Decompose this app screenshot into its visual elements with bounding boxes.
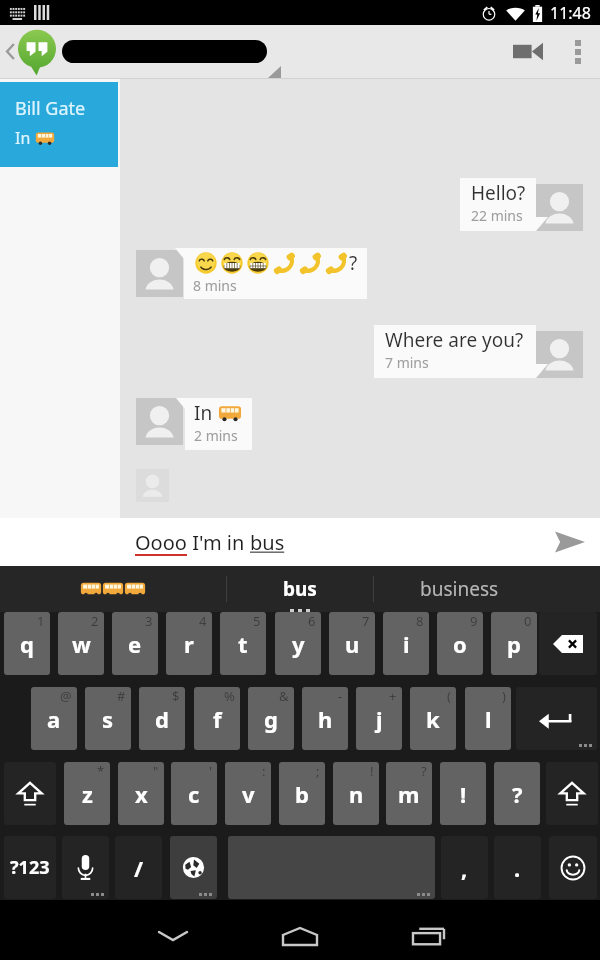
staticText: 4 bbox=[199, 612, 207, 630]
button[interactable]: More options bbox=[556, 25, 600, 78]
button[interactable]: x bbox=[118, 762, 164, 825]
staticText: 5 bbox=[253, 612, 261, 630]
staticText: b bbox=[295, 779, 309, 809]
button[interactable]: Shift bbox=[4, 762, 56, 825]
button[interactable]: ! bbox=[440, 762, 486, 825]
button[interactable]: Back bbox=[0, 25, 20, 78]
staticText: w bbox=[72, 629, 91, 659]
button[interactable]: Recents bbox=[368, 906, 488, 960]
staticText: o bbox=[453, 629, 467, 659]
staticText: Bill Gate bbox=[15, 96, 86, 121]
staticText: x bbox=[135, 779, 148, 809]
button[interactable]: u bbox=[329, 612, 375, 675]
button[interactable]: g bbox=[248, 687, 294, 750]
staticText: + bbox=[389, 687, 397, 705]
staticText: u bbox=[345, 629, 360, 659]
staticText: j bbox=[376, 704, 383, 734]
button[interactable]: bus bbox=[227, 566, 373, 612]
staticText: i bbox=[403, 629, 410, 659]
button[interactable]: y bbox=[275, 612, 321, 675]
button[interactable]: ?123 bbox=[4, 836, 56, 899]
staticText: t bbox=[238, 629, 248, 659]
staticText: ? bbox=[512, 779, 523, 809]
button[interactable]: Voice input bbox=[62, 836, 109, 899]
staticText: m bbox=[398, 779, 420, 809]
staticText: 8 bbox=[416, 612, 424, 630]
button[interactable]: , bbox=[441, 836, 488, 899]
staticText: r bbox=[184, 629, 194, 659]
button[interactable]: In bbox=[185, 398, 252, 450]
button[interactable]: Where are you? bbox=[374, 325, 536, 378]
button[interactable]: Home bbox=[240, 906, 360, 960]
staticText: / bbox=[134, 853, 144, 883]
button[interactable]: r bbox=[166, 612, 212, 675]
staticText: 9 bbox=[470, 612, 478, 630]
button[interactable]: e bbox=[112, 612, 158, 675]
staticText: g bbox=[264, 704, 278, 734]
button[interactable]: Video call bbox=[500, 25, 556, 78]
staticText: bus bbox=[250, 529, 285, 556]
staticText: - bbox=[338, 687, 343, 705]
staticText: In bbox=[194, 400, 218, 426]
button[interactable]: n bbox=[333, 762, 379, 825]
button[interactable]: q bbox=[4, 612, 50, 675]
button[interactable]: a bbox=[31, 687, 77, 750]
staticText: ! bbox=[370, 762, 374, 780]
staticText: ? bbox=[349, 250, 358, 276]
staticText: 8 mins bbox=[193, 276, 237, 295]
staticText: business bbox=[420, 576, 499, 602]
staticText: h bbox=[318, 704, 333, 734]
staticText: Oooo bbox=[135, 529, 187, 556]
staticText: 1 bbox=[37, 612, 45, 630]
button[interactable]: ? bbox=[494, 762, 540, 825]
button[interactable]: k bbox=[410, 687, 456, 750]
button[interactable]: Space bbox=[228, 836, 435, 899]
staticText: In bbox=[15, 127, 35, 149]
button[interactable]: Enter bbox=[516, 687, 597, 750]
button[interactable]: l bbox=[465, 687, 511, 750]
button[interactable]: Hide keyboard bbox=[113, 906, 233, 960]
button[interactable]: Send bbox=[540, 518, 600, 566]
button[interactable]: o bbox=[437, 612, 483, 675]
staticText: 3 bbox=[145, 612, 153, 630]
button[interactable]: Shift bbox=[546, 762, 598, 825]
staticText: 11:48 bbox=[550, 2, 591, 24]
staticText: 2 mins bbox=[194, 426, 238, 445]
button[interactable]: b bbox=[279, 762, 325, 825]
button[interactable]: t bbox=[220, 612, 266, 675]
button[interactable]: j bbox=[356, 687, 402, 750]
button[interactable]: Hello? bbox=[460, 178, 536, 231]
staticText: q bbox=[20, 629, 34, 659]
staticText: * bbox=[97, 762, 105, 780]
button[interactable]: Bill Gate bbox=[0, 82, 118, 167]
button[interactable]: Backspace bbox=[539, 612, 597, 675]
button[interactable]: w bbox=[58, 612, 104, 675]
staticText: ) bbox=[502, 687, 506, 705]
staticText: Where are you? bbox=[385, 327, 524, 353]
button[interactable]: f bbox=[194, 687, 240, 750]
button[interactable]: m bbox=[386, 762, 432, 825]
staticText: 2 bbox=[91, 612, 99, 630]
staticText: $ bbox=[172, 687, 180, 705]
button[interactable]: / bbox=[115, 836, 162, 899]
staticText: 7 bbox=[362, 612, 370, 630]
button[interactable]: . bbox=[494, 836, 541, 899]
button[interactable]: i bbox=[383, 612, 429, 675]
button[interactable]: z bbox=[64, 762, 110, 825]
staticText: s bbox=[102, 704, 114, 734]
button[interactable]: p bbox=[491, 612, 537, 675]
button[interactable]: bus emoji suggestion bbox=[0, 566, 226, 612]
staticText: bus bbox=[283, 576, 317, 602]
button[interactable]: Change language bbox=[170, 836, 217, 899]
button[interactable]: business bbox=[374, 566, 600, 612]
button[interactable]: ? bbox=[184, 248, 367, 299]
button[interactable]: Emoji bbox=[549, 836, 597, 899]
staticText: 6 bbox=[308, 612, 316, 630]
button[interactable]: h bbox=[302, 687, 348, 750]
staticText: l bbox=[485, 704, 492, 734]
button[interactable]: c bbox=[171, 762, 217, 825]
button[interactable]: s bbox=[85, 687, 131, 750]
button[interactable]: d bbox=[139, 687, 185, 750]
staticText: p bbox=[507, 629, 521, 659]
button[interactable]: v bbox=[225, 762, 271, 825]
